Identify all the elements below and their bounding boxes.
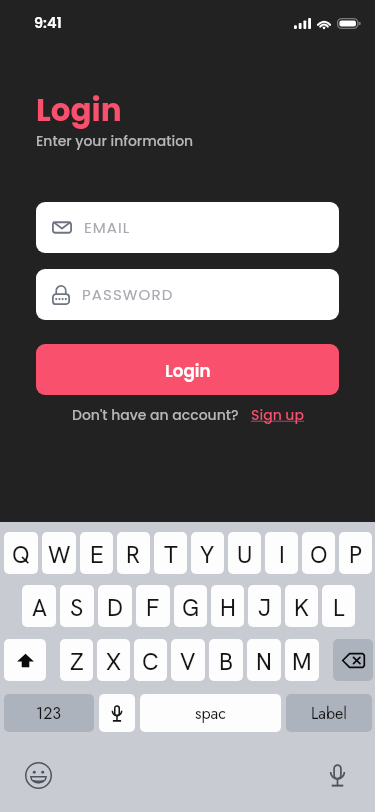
button[interactable]: spac	[140, 694, 281, 732]
button[interactable]: D	[98, 585, 132, 627]
button[interactable]: C	[134, 639, 167, 681]
staticText: L	[333, 592, 345, 623]
button[interactable]: M	[285, 639, 319, 681]
staticText: V	[180, 646, 196, 677]
staticText: I	[279, 539, 285, 570]
button[interactable]: L	[322, 585, 355, 627]
button[interactable]: T	[154, 532, 187, 574]
staticText: X	[106, 646, 122, 677]
button[interactable]: G	[174, 585, 207, 627]
staticText: PASSWORD	[82, 284, 174, 305]
staticText: H	[220, 592, 236, 623]
button[interactable]: EMAIL	[36, 202, 339, 253]
button[interactable]: V	[171, 639, 205, 681]
staticText: T	[164, 539, 178, 570]
staticText: R	[126, 539, 141, 570]
staticText: Y	[200, 539, 215, 570]
button[interactable]: Dictation	[321, 759, 353, 791]
button[interactable]: J	[248, 585, 281, 627]
staticText: 123	[36, 702, 62, 725]
button[interactable]: H	[211, 585, 244, 627]
staticText: C	[142, 646, 159, 677]
button[interactable]: A	[22, 585, 56, 627]
staticText: D	[107, 592, 124, 623]
button[interactable]: Login	[36, 344, 339, 395]
button[interactable]: Voice input	[99, 694, 135, 732]
staticText: EMAIL	[84, 217, 131, 238]
staticText: K	[294, 592, 309, 623]
button[interactable]: Shift	[4, 639, 46, 681]
staticText: F	[146, 592, 160, 623]
button[interactable]: O	[302, 532, 335, 574]
button[interactable]: Emoji	[22, 759, 54, 791]
staticText: A	[32, 592, 47, 623]
staticText: M	[292, 646, 312, 677]
staticText: Z	[70, 646, 84, 677]
button[interactable]: Q	[4, 532, 38, 574]
staticText: B	[219, 646, 234, 677]
staticText: Q	[12, 539, 31, 570]
button[interactable]: W	[42, 532, 76, 574]
button[interactable]: Label	[286, 694, 372, 732]
staticText: U	[237, 539, 253, 570]
button[interactable]: Y	[191, 532, 224, 574]
staticText: E	[90, 539, 104, 570]
staticText: W	[48, 539, 71, 570]
staticText: J	[258, 592, 271, 623]
button[interactable]: U	[228, 532, 261, 574]
staticText: Label	[311, 702, 347, 725]
staticText: Login	[165, 359, 211, 383]
staticText: S	[70, 592, 84, 623]
button[interactable]: N	[247, 639, 281, 681]
staticText: Don't have an account?	[72, 405, 239, 425]
staticText: N	[256, 646, 272, 677]
button[interactable]: Sign up	[251, 405, 304, 425]
button[interactable]: E	[80, 532, 113, 574]
button[interactable]: 123	[4, 694, 94, 732]
button[interactable]: B	[209, 639, 243, 681]
button[interactable]: I	[265, 532, 298, 574]
button[interactable]: F	[136, 585, 170, 627]
staticText: P	[349, 539, 363, 570]
button[interactable]: Backspace	[333, 639, 373, 681]
button[interactable]: P	[339, 532, 372, 574]
button[interactable]: K	[285, 585, 318, 627]
button[interactable]: PASSWORD	[36, 269, 339, 320]
staticText: Login	[36, 88, 122, 131]
button[interactable]: S	[60, 585, 94, 627]
button[interactable]: R	[117, 532, 150, 574]
staticText: Enter your information	[36, 131, 194, 151]
staticText: 9:41	[34, 13, 62, 33]
staticText: O	[310, 539, 328, 570]
button[interactable]: Z	[60, 639, 93, 681]
staticText: spac	[195, 702, 226, 725]
button[interactable]: X	[97, 639, 130, 681]
staticText: Sign up	[251, 405, 304, 425]
staticText: G	[182, 592, 200, 623]
